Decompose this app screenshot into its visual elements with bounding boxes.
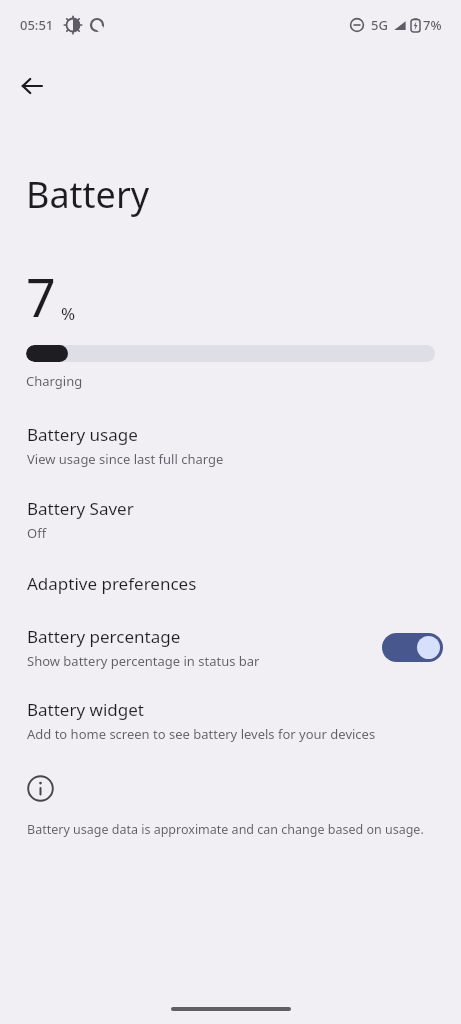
staticText: Battery usage: [27, 423, 138, 446]
staticText: View usage since last full charge: [27, 450, 224, 468]
button[interactable]: Battery percentage: [0, 623, 461, 672]
staticText: 5G: [371, 16, 388, 34]
button[interactable]: Battery Saver: [0, 495, 461, 544]
staticText: Battery usage data is approximate and ca…: [27, 821, 424, 838]
staticText: 7: [26, 261, 56, 332]
button[interactable]: Back: [10, 64, 54, 108]
staticText: Battery percentage: [27, 625, 181, 648]
staticText: Off: [27, 524, 47, 542]
staticText: %: [61, 302, 76, 325]
staticText: 05:51: [20, 16, 54, 34]
staticText: Battery Saver: [27, 497, 134, 520]
staticText: Charging: [26, 372, 83, 390]
button[interactable]: Battery widget: [0, 696, 461, 745]
staticText: Battery: [26, 170, 150, 219]
staticText: Add to home screen to see battery levels…: [27, 725, 376, 743]
staticText: Battery widget: [27, 698, 144, 721]
staticText: 7%: [423, 16, 442, 34]
staticText: Show battery percentage in status bar: [27, 652, 260, 670]
staticText: Adaptive preferences: [27, 572, 197, 595]
button[interactable]: Battery percentage toggle: [382, 633, 443, 662]
button[interactable]: Adaptive preferences: [0, 570, 461, 597]
button[interactable]: Battery usage: [0, 421, 461, 470]
